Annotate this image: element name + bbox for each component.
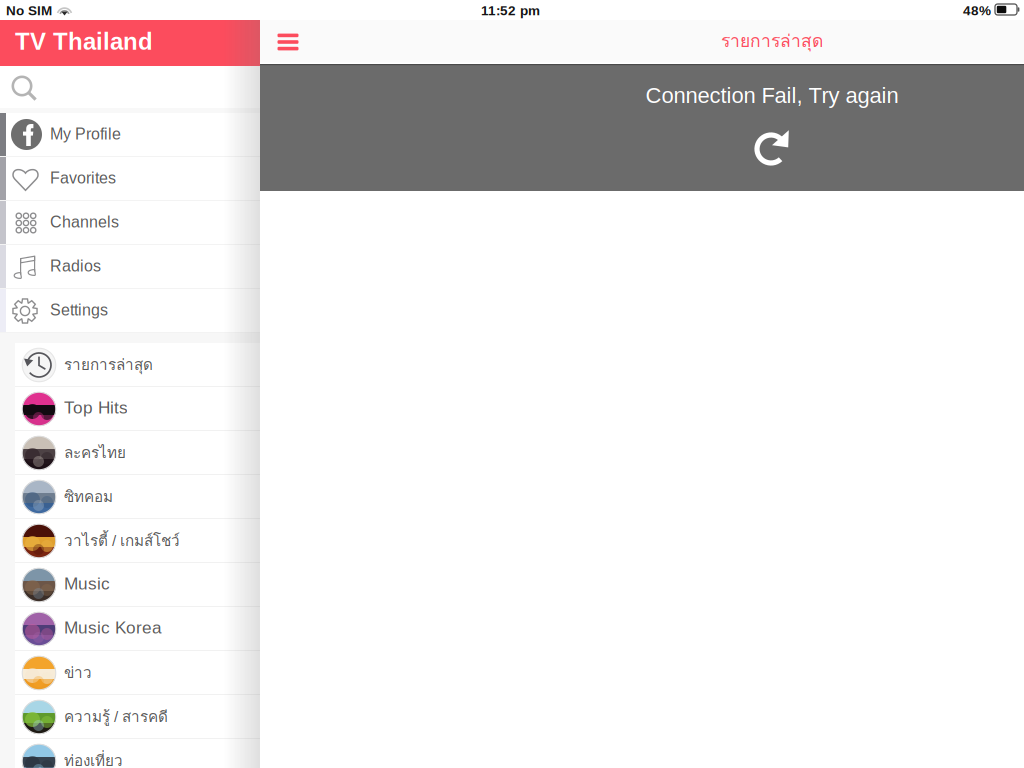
button[interactable]: วาไรตี้ / เกมส์โชว์ [0, 519, 260, 563]
staticText: Channels [50, 213, 119, 231]
button[interactable]: ซิทคอม [0, 475, 260, 519]
staticText: รายการล่าสุด [721, 27, 823, 55]
button[interactable]: Favorites [0, 157, 260, 201]
button[interactable]: ท่องเที่ยว [0, 739, 260, 768]
button[interactable]: ละครไทย [0, 431, 260, 475]
button[interactable]: รายการล่าสุด [0, 343, 260, 387]
button[interactable]: Channels [0, 201, 260, 245]
staticText: ท่องเที่ยว [64, 748, 123, 768]
button[interactable]: Retry [747, 127, 795, 171]
staticText: รายการล่าสุด [64, 352, 153, 377]
staticText: Top Hits [64, 398, 128, 417]
staticText: Favorites [50, 169, 116, 187]
button[interactable]: Top Hits [0, 387, 260, 431]
staticText: ซิทคอม [64, 484, 113, 509]
staticText: Connection Fail, Try again [645, 83, 898, 108]
staticText: My Profile [50, 125, 121, 143]
button[interactable]: Music [0, 563, 260, 607]
staticText: Radios [50, 257, 101, 275]
button[interactable]: Radios [0, 245, 260, 289]
button[interactable]: My Profile [0, 113, 260, 157]
button[interactable]: Music Korea [0, 607, 260, 651]
button[interactable]: Menu [264, 20, 312, 64]
staticText: Music Korea [64, 618, 162, 637]
button[interactable]: Settings [0, 289, 260, 333]
staticText: TV Thailand [15, 28, 153, 55]
button[interactable]: Search [0, 66, 260, 110]
staticText: วาไรตี้ / เกมส์โชว์ [64, 528, 180, 553]
button[interactable]: ข่าว [0, 651, 260, 695]
staticText: ข่าว [64, 660, 92, 685]
staticText: Settings [50, 301, 108, 319]
staticText: ละครไทย [64, 440, 126, 465]
staticText: ความรู้ / สารคดี [64, 704, 168, 729]
staticText: No SIM [6, 3, 52, 18]
button[interactable]: ความรู้ / สารคดี [0, 695, 260, 739]
staticText: Music [64, 574, 110, 593]
staticText: 11:52 pm [481, 3, 540, 18]
staticText: 48% [963, 3, 991, 18]
